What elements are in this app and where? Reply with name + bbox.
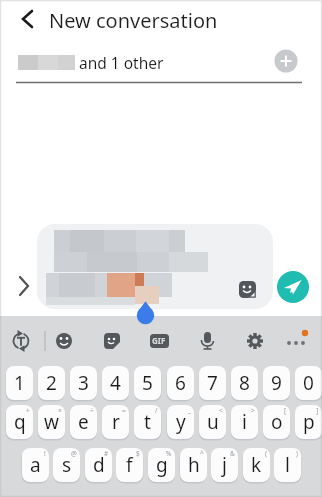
staticText: e [78,409,89,435]
staticText: @ [71,449,77,458]
staticText: l [285,452,290,478]
staticText: g [156,452,168,478]
staticText: 2 [46,370,57,396]
staticText: # [104,449,109,458]
button[interactable]: 0 [295,366,322,400]
button[interactable]: a [22,448,49,482]
staticText: 8 [239,370,250,396]
staticText: & [230,449,235,458]
staticText: $ [136,449,140,458]
staticText: s [62,452,72,478]
button[interactable]: 8 [231,366,258,400]
button[interactable]: y [167,405,194,439]
staticText: ] [316,406,319,415]
button[interactable]: 2 [38,366,65,400]
button[interactable] [37,224,273,309]
button[interactable]: 4 [102,366,129,400]
button[interactable] [50,327,78,355]
staticText: ) [296,449,298,458]
staticText: × [58,406,62,415]
button[interactable] [193,327,221,355]
staticText: p [303,409,315,435]
button[interactable] [98,327,126,355]
button[interactable] [7,327,35,355]
staticText: > [251,406,255,415]
button[interactable] [274,49,298,73]
staticText: New conversation [49,7,218,34]
staticText: ( [265,449,267,458]
staticText: o [271,409,283,435]
button[interactable] [277,271,309,303]
staticText: 4 [110,370,121,396]
staticText: + [26,406,30,415]
staticText: f [126,452,133,478]
staticText: a [30,452,41,478]
staticText: q [14,409,26,435]
button[interactable]: j [211,448,238,482]
button[interactable]: r [102,405,129,439]
button[interactable]: d [85,448,112,482]
button[interactable]: 6 [167,366,194,400]
staticText: 1 [14,370,25,396]
button[interactable]: w [38,405,65,439]
button[interactable]: i [231,405,258,439]
button[interactable]: l [274,448,301,482]
staticText: i [242,409,247,435]
button[interactable]: p [295,405,322,439]
staticText: ^ [200,449,204,458]
staticText: _ [188,406,191,415]
button[interactable]: t [134,405,161,439]
button[interactable]: h [180,448,207,482]
button[interactable] [14,6,42,32]
button[interactable]: 9 [263,366,290,400]
staticText: h [188,452,200,478]
staticText: % [166,449,172,458]
button[interactable]: 3 [70,366,97,400]
button[interactable]: f [116,448,143,482]
staticText: j [222,452,227,478]
staticText: d [93,452,105,478]
staticText: ! [44,449,46,458]
button[interactable]: 1 [6,366,33,400]
button[interactable]: k [243,448,270,482]
button[interactable]: 7 [199,366,226,400]
button[interactable]: g [148,448,175,482]
button[interactable] [145,327,173,355]
button[interactable] [282,327,310,355]
staticText: r [112,409,120,435]
button[interactable] [14,274,36,298]
staticText: 0 [303,370,314,396]
staticText: and 1 other [79,52,164,73]
staticText: k [251,452,262,478]
staticText: = [122,406,126,415]
button[interactable] [241,327,269,355]
staticText: / [155,406,158,415]
button[interactable]: o [263,405,290,439]
staticText: 5 [142,370,153,396]
staticText: 7 [207,370,218,396]
staticText: < [219,406,223,415]
staticText: w [44,409,59,435]
staticText: 9 [271,370,282,396]
staticText: 3 [78,370,89,396]
staticText: ÷ [90,406,94,415]
staticText: t [144,409,151,435]
staticText: [ [284,406,287,415]
button[interactable]: u [199,405,226,439]
button[interactable]: e [70,405,97,439]
staticText: u [207,409,219,435]
staticText: GIF [152,335,166,346]
staticText: y [176,409,186,435]
button[interactable]: q [6,405,33,439]
button[interactable]: 5 [134,366,161,400]
button[interactable]: s [53,448,80,482]
staticText: 6 [175,370,186,396]
